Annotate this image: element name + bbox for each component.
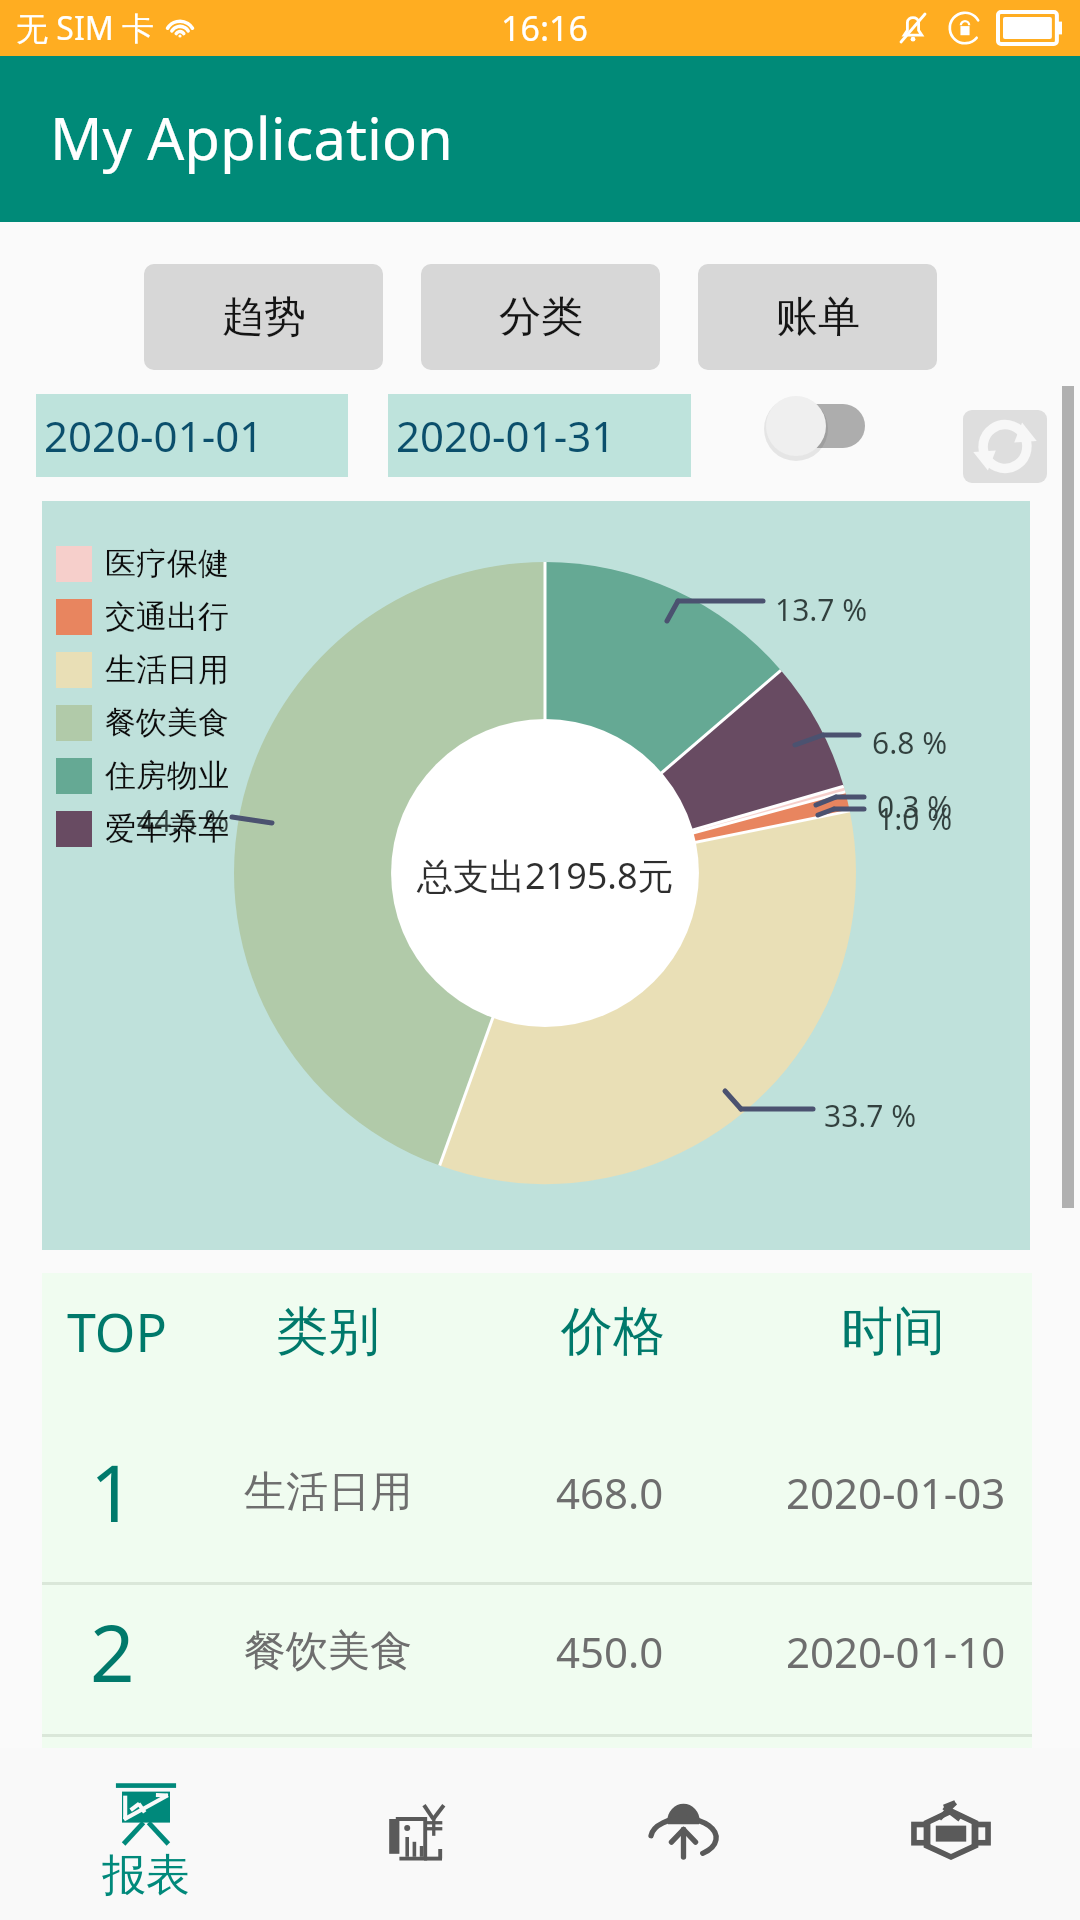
staticText: 餐饮美食 <box>105 703 229 742</box>
button[interactable]: Upload <box>613 1748 753 1920</box>
staticText: 趋势 <box>222 291 306 344</box>
staticText: 无 SIM 卡 <box>16 6 155 50</box>
staticText: 1.0 % <box>877 798 953 839</box>
staticText: 1 <box>90 1439 135 1545</box>
button[interactable]: Bills <box>348 1748 488 1920</box>
staticText: 44.5 % <box>137 800 230 841</box>
button[interactable]: Settings <box>881 1748 1021 1920</box>
staticText: My Application <box>50 98 453 177</box>
staticText: 分类 <box>499 291 583 344</box>
button[interactable]: 账单 <box>698 264 937 370</box>
staticText: 报表 <box>102 1848 190 1903</box>
staticText: 468.0 <box>556 1464 664 1521</box>
staticText: 总支出2195.8元 <box>417 851 674 900</box>
staticText: 餐饮美食 <box>244 1625 412 1678</box>
staticText: 医疗保健 <box>105 544 229 583</box>
staticText: 16:16 <box>501 5 588 51</box>
staticText: 账单 <box>776 291 860 344</box>
staticText: 时间 <box>841 1299 945 1365</box>
staticText: TOP <box>67 1296 167 1367</box>
button[interactable]: 报表 <box>38 1748 254 1920</box>
staticText: 价格 <box>561 1299 665 1365</box>
button[interactable]: 2020-01-31 <box>388 394 691 477</box>
staticText: 13.7 % <box>775 589 868 630</box>
button[interactable]: 趋势 <box>144 264 383 370</box>
staticText: 生活日用 <box>244 1466 412 1519</box>
staticText: 交通出行 <box>105 597 229 636</box>
staticText: 爱车养车 <box>105 809 229 848</box>
staticText: 住房物业 <box>105 756 229 795</box>
staticText: 450.0 <box>556 1623 664 1680</box>
staticText: 2020-01-01 <box>44 407 264 464</box>
staticText: 2020-01-10 <box>786 1623 1006 1680</box>
staticText: 2 <box>90 1599 135 1705</box>
button[interactable]: 分类 <box>421 264 660 370</box>
staticText: 2020-01-03 <box>786 1464 1006 1521</box>
button[interactable]: 1 <box>42 1402 1032 1582</box>
button[interactable]: Toggle switch <box>755 389 885 481</box>
staticText: 33.7 % <box>824 1095 917 1136</box>
staticText: 2020-01-31 <box>396 407 616 464</box>
staticText: 类别 <box>276 1299 380 1365</box>
button[interactable]: 2 <box>42 1585 1032 1734</box>
button[interactable]: Refresh <box>963 410 1047 483</box>
staticText: 生活日用 <box>105 650 229 689</box>
button[interactable]: 2020-01-01 <box>36 394 348 477</box>
staticText: 6.8 % <box>872 722 948 763</box>
staticText: 0.3 % <box>877 786 953 827</box>
